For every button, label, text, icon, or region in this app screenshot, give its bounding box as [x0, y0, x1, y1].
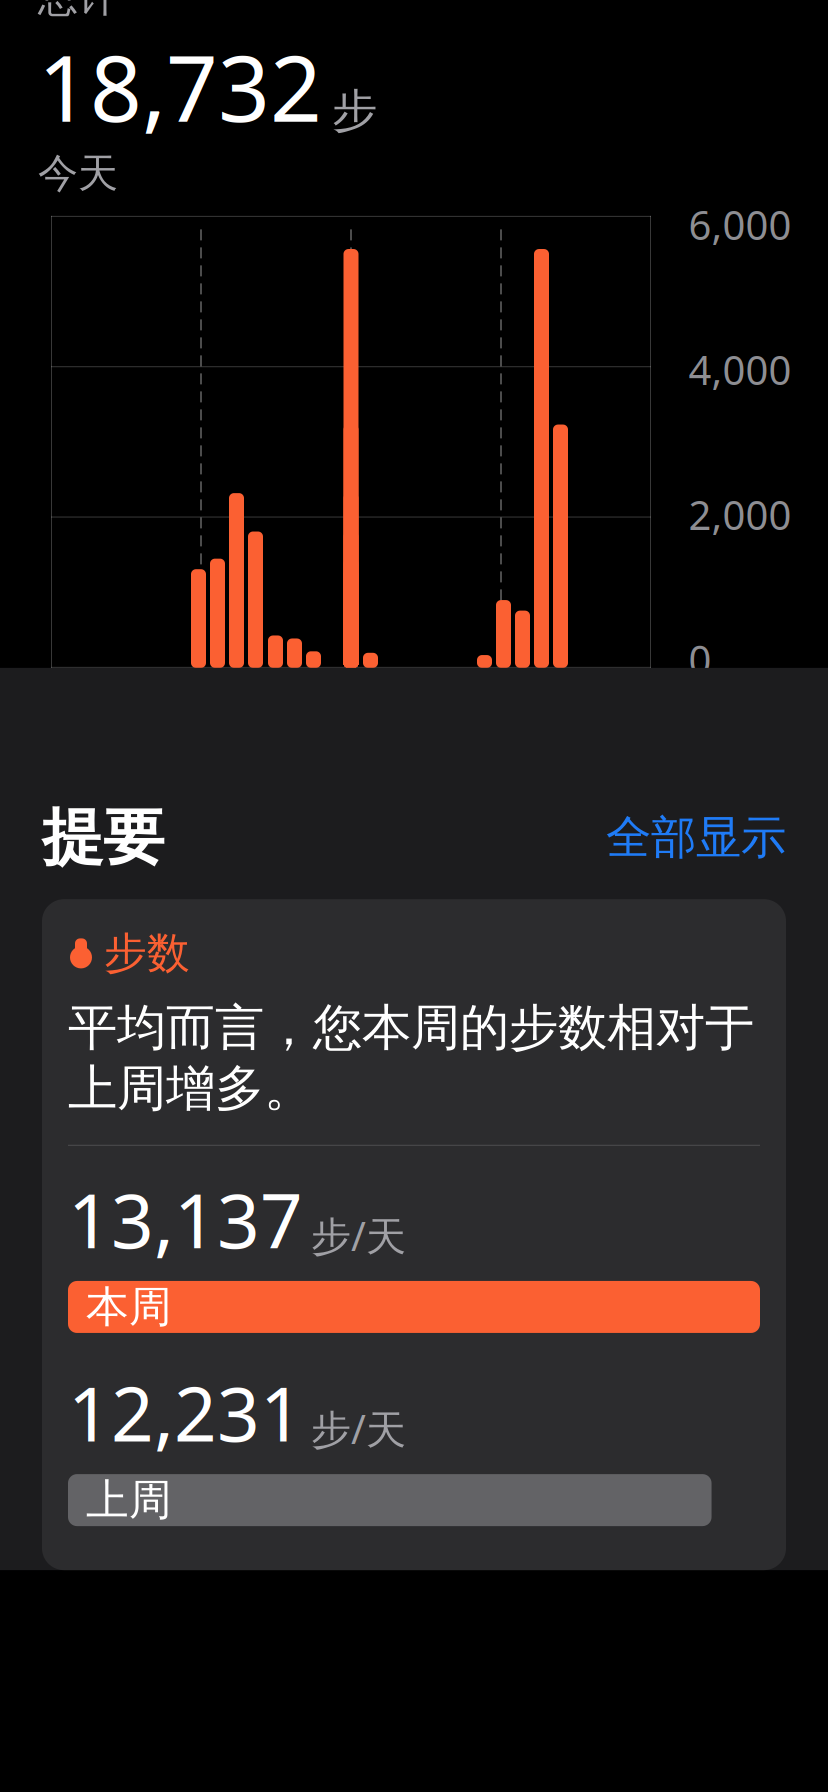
staticText: 提要	[42, 800, 164, 875]
staticText: 13,137	[68, 1170, 303, 1269]
staticText: 总计	[38, 0, 118, 22]
staticText: 今天	[38, 149, 118, 198]
staticText: 步/天	[311, 1402, 406, 1455]
button[interactable]: 全部显示	[586, 802, 786, 873]
staticText: 下午12时	[363, 664, 516, 714]
staticText: 12,231	[68, 1363, 303, 1462]
staticText: 平均而言，您本周的步数相对于上周增多。	[68, 998, 754, 1119]
staticText: 上午12时	[59, 664, 212, 714]
staticText: 6,000	[688, 198, 791, 251]
staticText: 步	[332, 83, 377, 139]
staticText: 6时	[513, 664, 571, 714]
staticText: 18,732	[38, 26, 322, 147]
staticText: 2,000	[688, 488, 791, 541]
staticText: 0	[688, 633, 711, 686]
button[interactable]: 步数	[42, 899, 786, 1570]
staticText: 全部显示	[606, 810, 786, 865]
staticText: 4,000	[688, 343, 791, 396]
staticText: 6时	[209, 664, 267, 714]
staticText: 步/天	[311, 1209, 406, 1262]
staticText: 步数	[104, 927, 190, 980]
staticText: 上周	[86, 1474, 172, 1526]
staticText: 本周	[86, 1281, 172, 1333]
